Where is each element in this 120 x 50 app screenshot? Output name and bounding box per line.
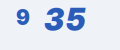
staticText: 9 bbox=[16, 5, 30, 30]
staticText: 35 bbox=[44, 1, 85, 38]
